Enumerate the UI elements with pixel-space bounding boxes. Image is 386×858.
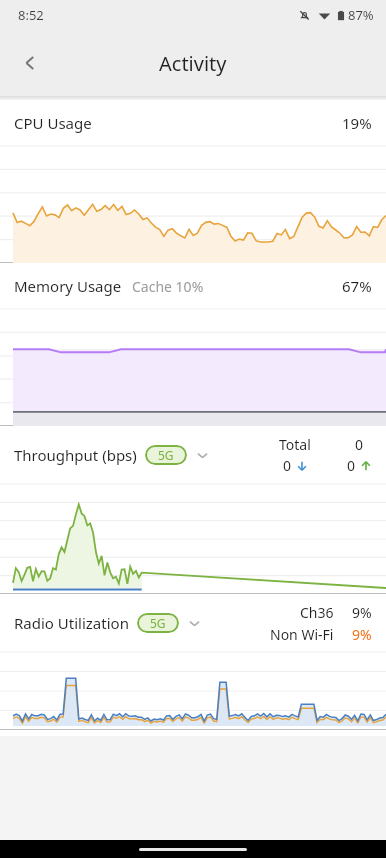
staticText: Cache 10%: [132, 277, 204, 296]
button[interactable]: Throughput (bps): [0, 426, 386, 484]
staticText: 67%: [342, 276, 372, 296]
staticText: Activity: [159, 50, 227, 77]
button[interactable]: Select band: [189, 442, 215, 468]
button[interactable]: Radio Utilization: [0, 594, 386, 652]
staticText: Total: [279, 435, 311, 454]
staticText: Radio Utilization: [14, 613, 129, 633]
button[interactable]: Select band: [181, 610, 207, 636]
staticText: 0: [355, 435, 364, 454]
button[interactable]: 5G: [137, 613, 179, 633]
staticText: CPU Usage: [14, 113, 92, 133]
staticText: 5G: [150, 615, 166, 631]
staticText: Non Wi-Fi: [270, 625, 334, 644]
staticText: 5G: [158, 447, 174, 463]
staticText: 8:52: [18, 6, 44, 24]
staticText: Ch36: [300, 603, 334, 622]
staticText: Throughput (bps): [14, 445, 137, 465]
staticText: 19%: [342, 113, 372, 133]
staticText: 0: [283, 456, 292, 475]
staticText: 0: [347, 456, 356, 475]
button[interactable]: 5G: [145, 445, 187, 465]
staticText: 87%: [348, 6, 374, 24]
button[interactable]: Memory Usage: [0, 263, 386, 309]
staticText: 9%: [352, 603, 372, 622]
button[interactable]: CPU Usage: [0, 100, 386, 146]
staticText: Memory Usage: [14, 276, 122, 296]
staticText: 9%: [352, 625, 372, 644]
button[interactable]: Back: [8, 41, 52, 85]
